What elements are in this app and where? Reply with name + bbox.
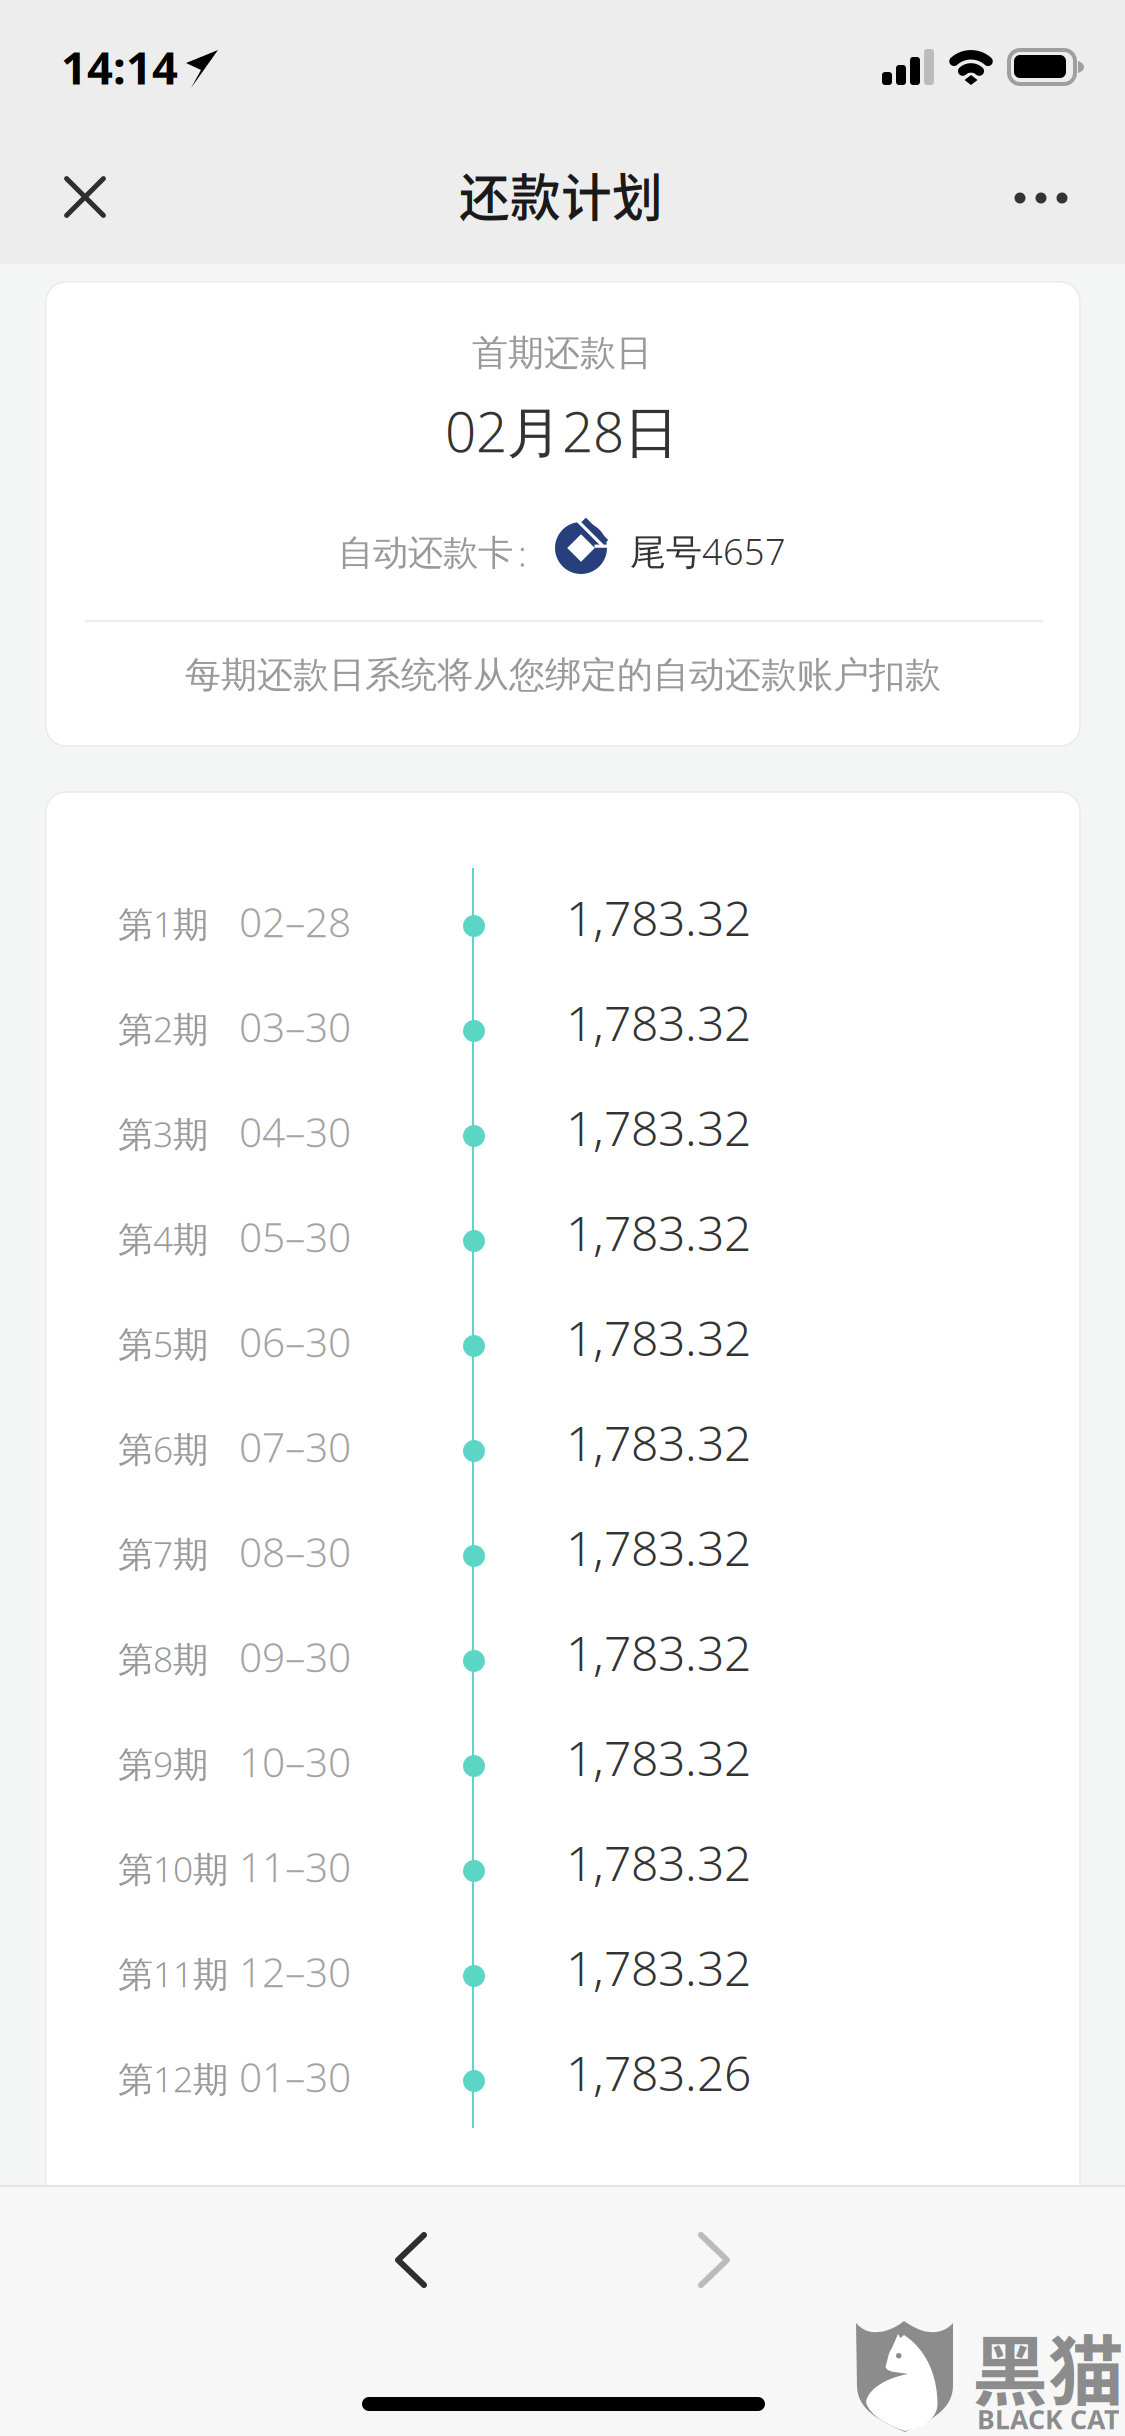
staticText: 1,783.32 [566, 1411, 751, 1474]
staticText: 第2期 [118, 1005, 208, 1052]
staticText: 第4期 [118, 1215, 208, 1262]
staticText: 1,783.32 [566, 1306, 751, 1369]
staticText: 第9期 [118, 1740, 208, 1787]
button[interactable]: 第8期 [46, 1608, 1080, 1713]
button[interactable]: 第9期 [46, 1713, 1080, 1818]
staticText: 08–30 [239, 1524, 351, 1578]
staticText: 1,783.32 [566, 1621, 751, 1684]
button[interactable]: 更多 [986, 142, 1096, 252]
staticText: 14:14 [61, 37, 178, 97]
staticText: 1,783.32 [566, 1201, 751, 1264]
staticText: 自动还款卡 [338, 531, 513, 575]
staticText: 01–30 [239, 2049, 351, 2103]
staticText: 尾号4657 [630, 527, 786, 575]
staticText: 12–30 [239, 1944, 351, 1998]
staticText: 1,783.32 [566, 1516, 751, 1579]
staticText: 首期还款日 [472, 331, 652, 375]
button[interactable]: 第6期 [46, 1398, 1080, 1503]
staticText: 09–30 [239, 1629, 351, 1683]
staticText: 第3期 [118, 1110, 208, 1157]
staticText: 02–28 [239, 894, 351, 948]
button[interactable]: 第12期 [46, 2028, 1080, 2133]
button[interactable]: 第2期 [46, 978, 1080, 1083]
staticText: 11–30 [239, 1839, 351, 1893]
staticText: 10–30 [239, 1734, 351, 1788]
staticText: : [518, 529, 527, 576]
staticText: 还款计划 [459, 159, 663, 230]
button[interactable]: 关闭 [30, 142, 140, 252]
button[interactable]: 下一页 [659, 2205, 769, 2315]
staticText: 1,783.32 [566, 1726, 751, 1789]
staticText: 07–30 [239, 1419, 351, 1473]
staticText: 第12期 [118, 2055, 228, 2102]
staticText: 第10期 [118, 1845, 228, 1892]
staticText: 第5期 [118, 1320, 208, 1367]
staticText: 02月28日 [445, 395, 679, 467]
button[interactable]: 第3期 [46, 1083, 1080, 1188]
staticText: 黑猫 [972, 2312, 1124, 2420]
button[interactable]: 上一页 [356, 2205, 466, 2315]
button[interactable]: 第11期 [46, 1923, 1080, 2028]
staticText: 第11期 [118, 1950, 228, 1997]
staticText: 每期还款日系统将从您绑定的自动还款账户扣款 [185, 653, 941, 697]
staticText: 1,783.32 [566, 1096, 751, 1159]
button[interactable]: 第4期 [46, 1188, 1080, 1293]
staticText: 1,783.26 [566, 2041, 751, 2104]
staticText: 1,783.32 [566, 991, 751, 1054]
staticText: BLACK CAT [977, 2401, 1119, 2436]
staticText: 1,783.32 [566, 1831, 751, 1894]
staticText: 第6期 [118, 1425, 208, 1472]
staticText: 1,783.32 [566, 886, 751, 949]
staticText: 06–30 [239, 1314, 351, 1368]
staticText: 第7期 [118, 1530, 208, 1577]
staticText: 05–30 [239, 1209, 351, 1263]
button[interactable]: 第7期 [46, 1503, 1080, 1608]
button[interactable]: 第10期 [46, 1818, 1080, 1923]
staticText: 03–30 [239, 999, 351, 1053]
button[interactable]: 第5期 [46, 1293, 1080, 1398]
staticText: 1,783.32 [566, 1936, 751, 1999]
staticText: 04–30 [239, 1104, 351, 1158]
staticText: 第8期 [118, 1635, 208, 1682]
staticText: 第1期 [118, 900, 208, 947]
button[interactable]: 第1期 [46, 873, 1080, 978]
